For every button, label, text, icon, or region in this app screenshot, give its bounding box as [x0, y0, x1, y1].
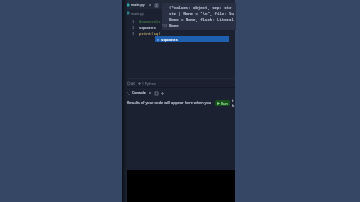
staticText: None = None, flush: Literal [169, 17, 234, 22]
button[interactable]: main.py [122, 9, 235, 17]
staticText: squares [161, 37, 178, 42]
staticText: squares [139, 25, 156, 30]
staticText: print(sq) [139, 31, 161, 36]
button[interactable]: Close console [148, 91, 152, 95]
button[interactable]: Clear console [154, 91, 158, 95]
staticText: None [169, 23, 179, 28]
button[interactable]: v [155, 36, 229, 42]
staticText: main.py [131, 11, 144, 16]
staticText: Run [221, 101, 228, 106]
button[interactable]: New console [160, 91, 164, 95]
staticText: str | None = "\n", file: Su [169, 11, 234, 16]
staticText: v [157, 37, 159, 42]
button[interactable]: >_ [126, 90, 146, 95]
staticText: main.py [131, 2, 145, 7]
button[interactable]: Run [215, 100, 230, 106]
staticText: 1/2 [162, 23, 168, 28]
button[interactable]: Close tab [148, 3, 152, 7]
staticText: Console [132, 90, 146, 95]
staticText: 2 [132, 25, 135, 30]
staticText: #numerals [139, 19, 161, 24]
staticText: All [131, 81, 135, 85]
staticText: Results of your code will appear here wh… [127, 100, 212, 105]
staticText: th [232, 98, 235, 108]
button[interactable]: Split editor [154, 3, 158, 7]
button[interactable]: main.py [122, 0, 160, 9]
staticText: 1 Python [142, 81, 156, 85]
staticText: 1 [132, 19, 135, 24]
staticText: >_ [126, 90, 131, 95]
staticText: (*values: object, sep: str [169, 5, 232, 10]
staticText: 3 [132, 31, 135, 36]
